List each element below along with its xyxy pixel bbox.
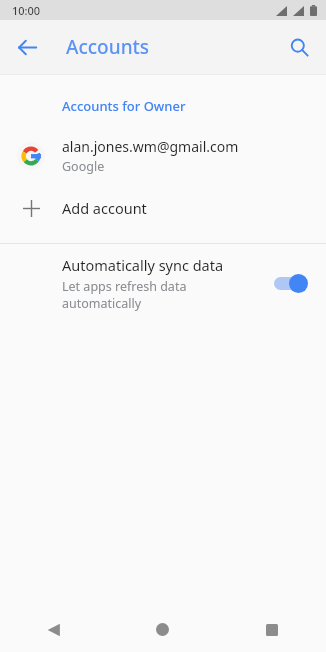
button[interactable]: Add account bbox=[0, 185, 326, 231]
staticText: Google bbox=[62, 158, 105, 175]
button[interactable]: Recent apps bbox=[217, 607, 326, 652]
staticText: Accounts bbox=[66, 34, 150, 60]
staticText: Add account bbox=[62, 198, 147, 218]
staticText: Let apps refresh data automatically bbox=[62, 278, 187, 311]
button[interactable]: Back bbox=[0, 607, 108, 652]
staticText: Automatically sync data bbox=[62, 255, 224, 275]
staticText: alan.jones.wm@gmail.com bbox=[62, 137, 239, 156]
staticText: Accounts for Owner bbox=[62, 97, 186, 115]
staticText: 10:00 bbox=[12, 3, 41, 18]
button[interactable]: Home bbox=[108, 607, 217, 652]
button[interactable]: Automatically sync data toggle bbox=[272, 271, 312, 295]
button[interactable]: Back bbox=[6, 26, 48, 68]
button[interactable]: Search bbox=[278, 26, 320, 68]
button[interactable]: Automatically sync data bbox=[0, 244, 326, 322]
button[interactable]: alan.jones.wm@gmail.com bbox=[0, 127, 326, 185]
